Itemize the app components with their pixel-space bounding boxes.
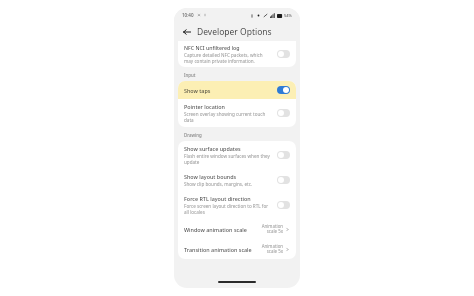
staticText: Pointer location	[184, 103, 225, 110]
staticText: Show layout bounds	[184, 173, 237, 180]
staticText: Force RTL layout direction	[184, 195, 251, 202]
staticText: Animation scale 5x	[259, 243, 283, 255]
button[interactable]: Force RTL layout direction	[178, 191, 296, 219]
button[interactable]: Show taps	[178, 81, 296, 99]
staticText: Capture detailed NFC packets, which may …	[184, 52, 273, 64]
button[interactable]: Toggle	[277, 86, 290, 94]
button[interactable]: Toggle	[277, 201, 290, 209]
staticText: 10:40	[182, 12, 194, 18]
button[interactable]: Toggle	[277, 151, 290, 159]
button[interactable]: NFC NCI unfiltered log	[178, 41, 296, 67]
staticText: Drawing	[184, 132, 202, 138]
staticText: Developer Options	[197, 26, 272, 38]
staticText: Screen overlay showing current touch dat…	[184, 111, 273, 123]
button[interactable]: Toggle	[277, 176, 290, 184]
staticText: Transition animation scale	[184, 246, 256, 253]
staticText: Show clip bounds, margins, etc.	[184, 181, 253, 187]
button[interactable]: Toggle	[277, 109, 290, 117]
staticText: NFC NCI unfiltered log	[184, 44, 240, 51]
staticText: Animation scale 5x	[259, 223, 283, 235]
button[interactable]: Transition animation scale	[178, 239, 296, 259]
staticText: Input	[184, 72, 196, 78]
staticText: 54%	[284, 13, 292, 18]
staticText: Force screen layout direction to RTL for…	[184, 203, 273, 215]
button[interactable]: Show layout bounds	[178, 169, 296, 191]
staticText: Flash entire window surfaces when they u…	[184, 153, 273, 165]
button[interactable]: Pointer location	[178, 99, 296, 127]
button[interactable]: Back	[181, 26, 193, 38]
staticText: Show surface updates	[184, 145, 241, 152]
staticText: Show taps	[184, 87, 277, 94]
button[interactable]: Window animation scale	[178, 219, 296, 239]
staticText: Window animation scale	[184, 226, 256, 233]
button[interactable]: Toggle	[277, 50, 290, 58]
button[interactable]: Show surface updates	[178, 141, 296, 169]
